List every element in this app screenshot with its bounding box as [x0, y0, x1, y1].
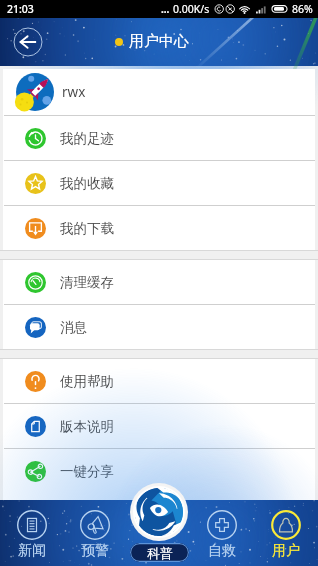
staticText: 使用帮助	[60, 373, 114, 390]
staticText: 清理缓存	[60, 274, 114, 291]
button[interactable]: 科普	[126, 500, 190, 566]
staticText: 消息	[60, 319, 87, 336]
staticText: rwx	[62, 83, 86, 101]
button[interactable]: 一键分享	[3, 449, 315, 493]
staticText: 科普	[147, 545, 173, 561]
staticText: ...	[161, 2, 170, 16]
button[interactable]: 我的收藏	[3, 161, 315, 205]
staticText: 我的下载	[60, 220, 114, 237]
staticText: 0.00K/s	[173, 2, 210, 16]
staticText: 一键分享	[60, 463, 114, 480]
button[interactable]: 我的下载	[3, 206, 315, 250]
button[interactable]: Back	[13, 27, 43, 57]
button[interactable]: 预警	[63, 500, 126, 566]
button[interactable]: 使用帮助	[3, 359, 315, 403]
button[interactable]: 科普	[133, 486, 185, 538]
button[interactable]: 用户	[254, 500, 318, 566]
staticText: 我的收藏	[60, 175, 114, 192]
staticText: 预警	[81, 542, 109, 560]
button[interactable]: 自救	[190, 500, 254, 566]
staticText: 我的足迹	[60, 130, 114, 147]
staticText: 86%	[292, 2, 313, 16]
staticText: 21:03	[7, 2, 34, 16]
button[interactable]: 版本说明	[3, 404, 315, 448]
button[interactable]: 我的足迹	[3, 116, 315, 160]
button[interactable]: rwx	[3, 69, 315, 115]
button[interactable]: 新闻	[0, 500, 63, 566]
staticText: 用户	[272, 542, 300, 560]
staticText: 版本说明	[60, 418, 114, 435]
staticText: 自救	[208, 542, 236, 560]
button[interactable]: 科普	[130, 543, 189, 562]
staticText: 新闻	[18, 542, 46, 560]
button[interactable]: 消息	[3, 305, 315, 349]
staticText: 用户中心	[129, 32, 189, 51]
button[interactable]: 清理缓存	[3, 260, 315, 304]
